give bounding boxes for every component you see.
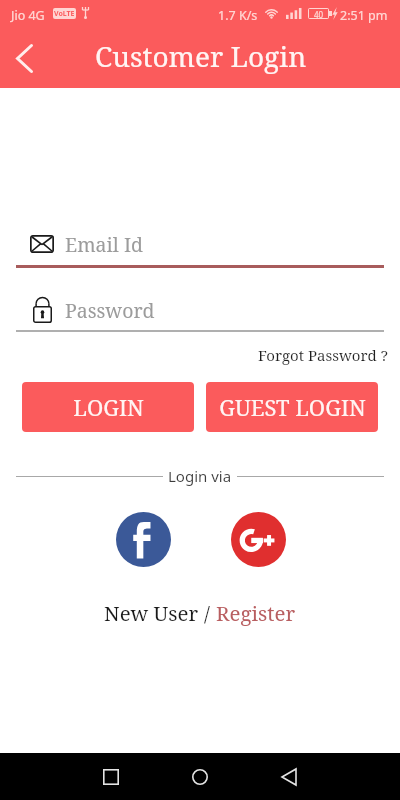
staticText: Forgot Password ? — [258, 345, 388, 365]
button[interactable]: LOGIN — [22, 382, 194, 432]
staticText: Jio 4G — [11, 7, 45, 24]
staticText: 40 — [314, 9, 324, 18]
staticText: GUEST LOGIN — [219, 392, 366, 422]
button[interactable]: Login with Google — [231, 512, 286, 567]
button[interactable]: Forgot Password ? — [228, 341, 388, 369]
button[interactable]: Back — [2, 36, 46, 80]
button[interactable]: Home — [176, 753, 224, 800]
staticText: LOGIN — [73, 392, 144, 422]
staticText: New User — [104, 599, 204, 627]
button[interactable]: GUEST LOGIN — [206, 382, 378, 432]
staticText: / — [204, 599, 216, 627]
staticText: VoLTE — [54, 9, 75, 19]
button[interactable]: Login with Facebook — [116, 512, 171, 567]
staticText: Email Id — [65, 231, 144, 258]
staticText: Login via — [168, 466, 232, 486]
staticText: 2:51 pm — [340, 7, 388, 24]
button[interactable]: Back — [265, 753, 313, 800]
staticText: Password — [65, 297, 155, 324]
button[interactable]: Recent apps — [87, 753, 135, 800]
staticText: Customer Login — [95, 37, 307, 75]
staticText: 1.7 K/s — [218, 7, 258, 24]
button[interactable]: Register — [216, 599, 296, 627]
